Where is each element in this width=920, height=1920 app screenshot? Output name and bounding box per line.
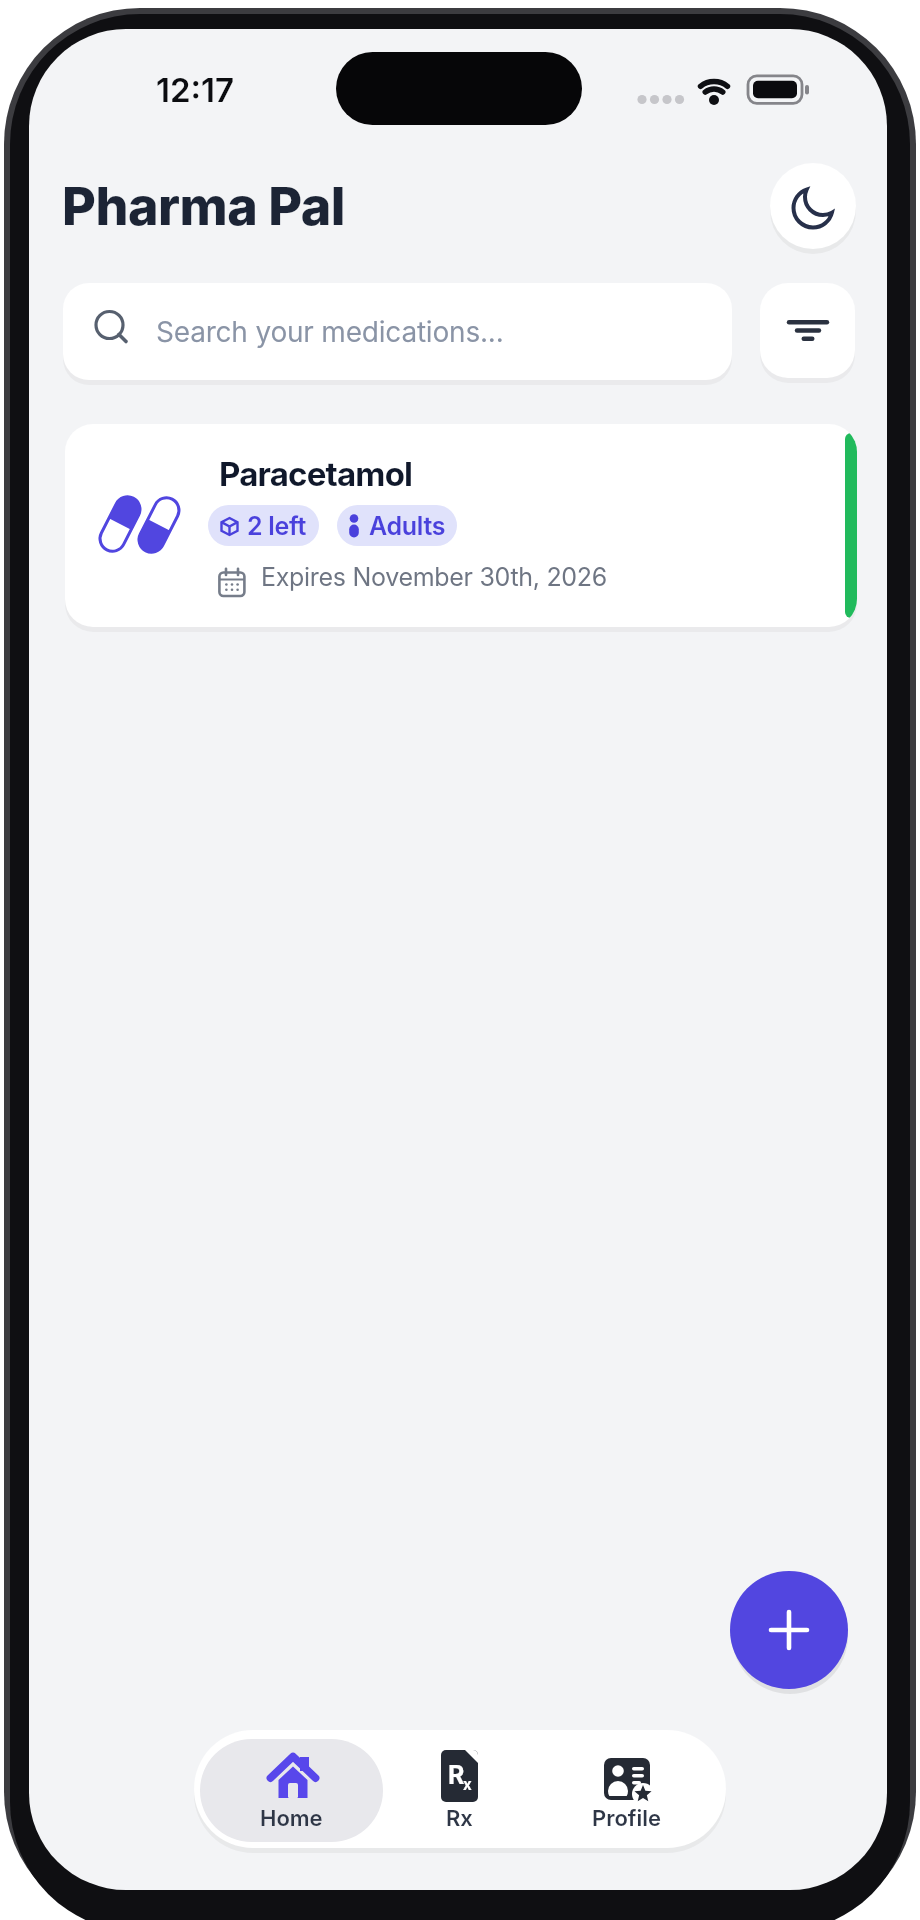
staticText: Adults [369, 511, 446, 541]
button[interactable] [770, 163, 856, 249]
staticText: Pharma Pal [62, 175, 346, 238]
button[interactable]: Home [200, 1739, 383, 1842]
button[interactable]: Search your medications... [63, 283, 732, 380]
button[interactable]: Profile [562, 1730, 692, 1848]
staticText: Paracetamol [219, 454, 413, 494]
staticText: R [448, 1760, 465, 1790]
staticText: Profile [592, 1805, 662, 1832]
staticText: Home [260, 1805, 323, 1832]
button[interactable]: R [394, 1730, 524, 1848]
staticText: 2 left [247, 511, 307, 541]
staticText: Search your medications... [156, 315, 504, 349]
staticText: Expires November 30th, 2026 [261, 562, 607, 592]
staticText: x [463, 1775, 472, 1793]
button[interactable] [760, 283, 855, 378]
button[interactable] [730, 1571, 848, 1689]
staticText: Rx [446, 1805, 473, 1832]
staticText: 12:17 [156, 70, 235, 106]
button[interactable]: Paracetamol [65, 424, 857, 627]
